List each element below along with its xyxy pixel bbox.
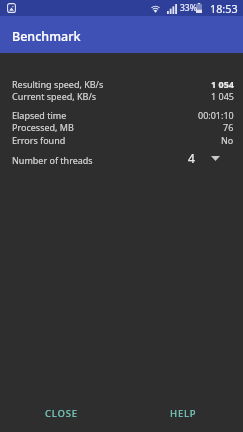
button[interactable]: CLOSE xyxy=(37,403,86,424)
staticText: 1 045 xyxy=(211,90,234,102)
button[interactable]: Number of threads xyxy=(0,150,243,172)
staticText: 00:01:10 xyxy=(198,109,234,121)
staticText: Current speed, KB/s xyxy=(12,90,97,102)
staticText: 1 054 xyxy=(211,78,234,90)
staticText: Resulting speed, KB/s xyxy=(12,78,104,90)
staticText: Benchmark xyxy=(12,28,81,45)
staticText: Errors found xyxy=(12,134,66,146)
staticText: 4 xyxy=(188,150,195,166)
staticText: CLOSE xyxy=(45,407,78,420)
staticText: 18:53 xyxy=(210,1,238,16)
staticText: Processed, MB xyxy=(12,121,74,133)
staticText: HELP xyxy=(170,407,197,420)
staticText: No xyxy=(221,134,234,146)
staticText: 76 xyxy=(223,121,234,133)
staticText: Number of threads xyxy=(12,154,93,166)
button[interactable]: HELP xyxy=(162,403,205,424)
staticText: Elapsed time xyxy=(12,109,67,121)
staticText: 33% xyxy=(180,2,197,14)
